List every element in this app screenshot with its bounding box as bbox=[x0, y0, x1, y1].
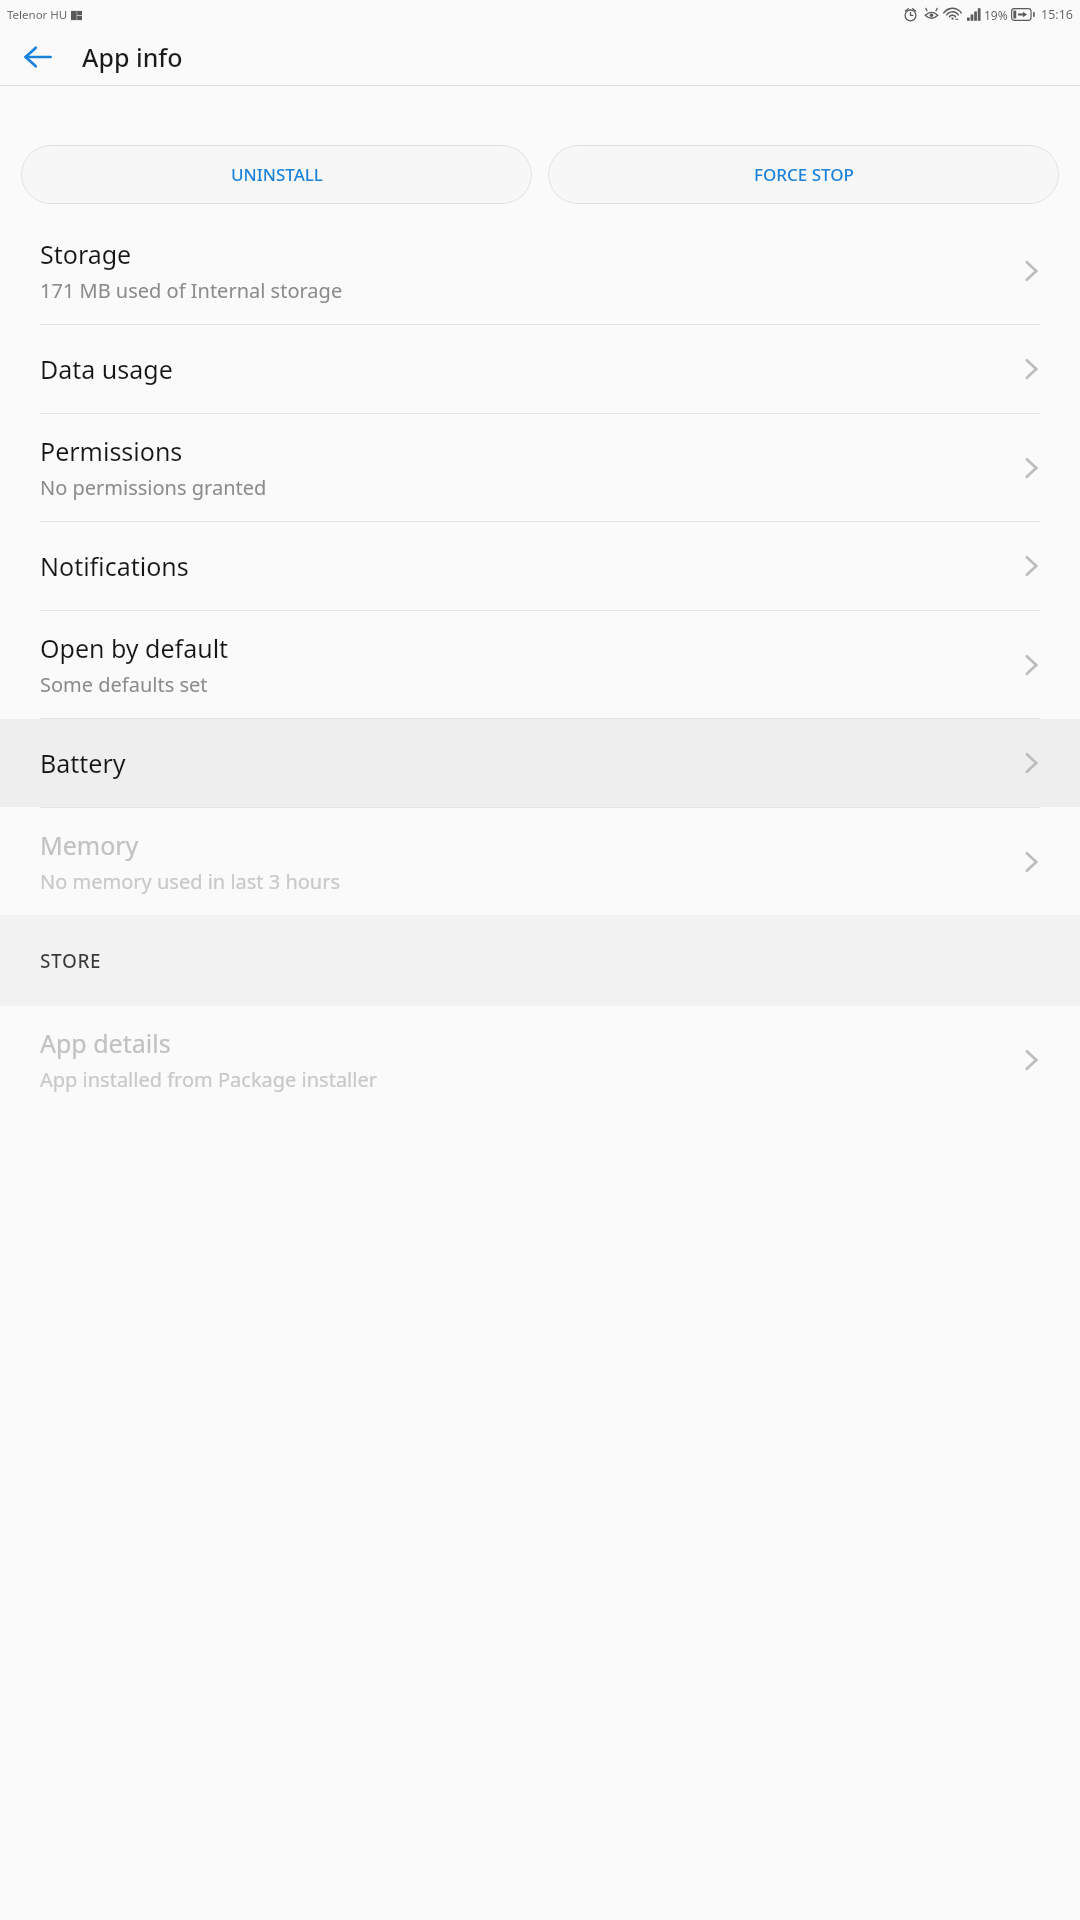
staticText: No memory used in last 3 hours bbox=[40, 868, 341, 895]
button[interactable]: Battery bbox=[0, 719, 1080, 807]
button[interactable]: Notifications bbox=[0, 522, 1080, 610]
staticText: 171 MB used of Internal storage bbox=[40, 277, 343, 304]
staticText: App info bbox=[82, 40, 183, 74]
button[interactable]: UNINSTALL bbox=[21, 145, 532, 204]
staticText: FORCE STOP bbox=[754, 163, 854, 186]
button[interactable]: Permissions bbox=[0, 414, 1080, 521]
staticText: STORE bbox=[40, 948, 102, 974]
staticText: Permissions bbox=[40, 434, 183, 468]
staticText: Storage bbox=[40, 237, 132, 271]
staticText: Battery bbox=[40, 746, 126, 780]
button[interactable]: Back bbox=[14, 33, 62, 81]
staticText: App details bbox=[40, 1026, 171, 1060]
staticText: Some defaults set bbox=[40, 671, 208, 698]
staticText: Data usage bbox=[40, 352, 173, 386]
button[interactable]: Storage bbox=[0, 217, 1080, 324]
staticText: Notifications bbox=[40, 549, 189, 583]
button[interactable]: App details bbox=[0, 1006, 1080, 1113]
staticText: App installed from Package installer bbox=[40, 1066, 377, 1093]
staticText: UNINSTALL bbox=[231, 163, 323, 186]
staticText: No permissions granted bbox=[40, 474, 267, 501]
button[interactable]: Open by default bbox=[0, 611, 1080, 718]
button[interactable]: Data usage bbox=[0, 325, 1080, 413]
staticText: 19% bbox=[984, 7, 1008, 23]
staticText: Telenor HU bbox=[7, 7, 68, 23]
staticText: 15:16 bbox=[1041, 6, 1073, 23]
staticText: Open by default bbox=[40, 631, 229, 665]
button[interactable]: Memory bbox=[0, 808, 1080, 915]
button[interactable]: FORCE STOP bbox=[548, 145, 1059, 204]
staticText: Memory bbox=[40, 828, 139, 862]
